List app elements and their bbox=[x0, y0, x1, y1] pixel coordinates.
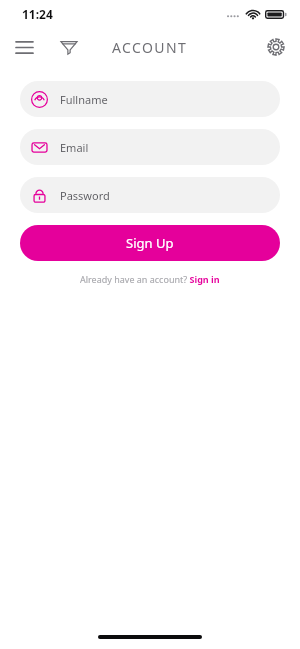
button[interactable]: Menu bbox=[9, 32, 39, 62]
button[interactable]: Settings bbox=[261, 32, 291, 62]
staticText: ACCOUNT bbox=[112, 38, 188, 57]
button[interactable]: Already have an account? Sign in bbox=[74, 271, 226, 287]
button[interactable]: Email bbox=[20, 129, 280, 165]
staticText: Already have an account? Sign in bbox=[80, 273, 220, 285]
button[interactable]: Filter bbox=[55, 33, 83, 61]
staticText: Sign Up bbox=[126, 234, 174, 252]
staticText: Password bbox=[60, 188, 110, 203]
button[interactable]: Password bbox=[20, 177, 280, 213]
staticText: Email bbox=[60, 140, 89, 155]
button[interactable]: Sign Up bbox=[20, 225, 280, 261]
staticText: 11:24 bbox=[22, 6, 53, 22]
staticText: Fullname bbox=[60, 92, 108, 107]
button[interactable]: Fullname bbox=[20, 81, 280, 117]
